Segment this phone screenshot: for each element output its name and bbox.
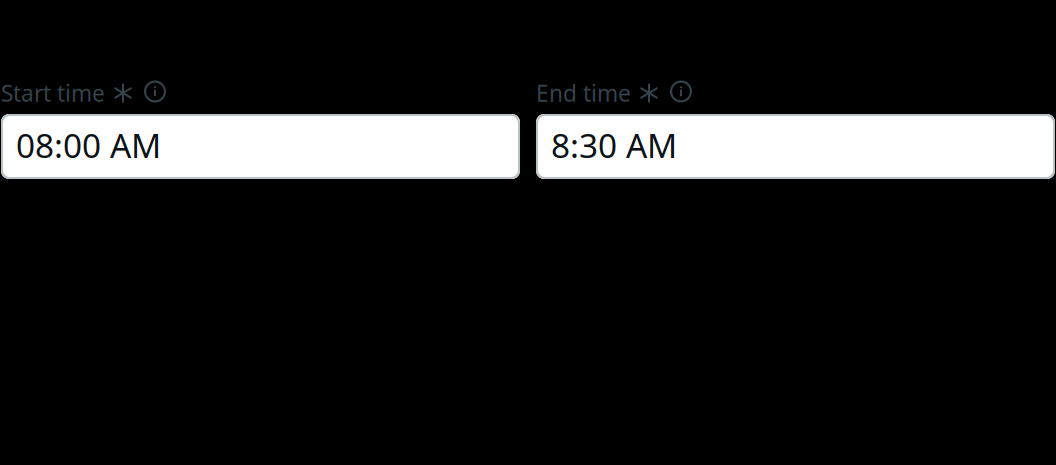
button[interactable]: 8:30 AM: [536, 114, 1055, 179]
staticText: End time: [536, 78, 631, 108]
button[interactable]: More info about End time: [658, 80, 692, 105]
staticText: Start time: [1, 78, 105, 108]
staticText: 08:00 AM: [16, 123, 161, 167]
button[interactable]: 08:00 AM: [1, 114, 520, 179]
staticText: 8:30 AM: [551, 123, 677, 167]
button[interactable]: More info about Start time: [132, 80, 166, 105]
